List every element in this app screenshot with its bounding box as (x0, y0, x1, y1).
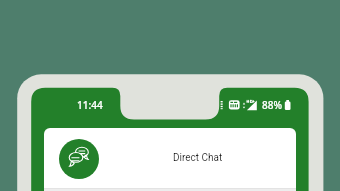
staticText: 88% (262, 98, 282, 112)
button[interactable]: Direct Chat (44, 128, 296, 188)
staticText: 11:44 (77, 98, 103, 112)
staticText: Direct Chat (173, 152, 223, 164)
